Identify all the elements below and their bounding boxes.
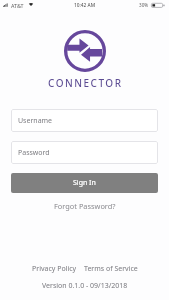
staticText: Username: [18, 116, 53, 126]
button[interactable]: Terms of Service: [83, 262, 139, 276]
button[interactable]: Forgot Password?: [48, 197, 122, 215]
staticText: Sign In: [73, 178, 96, 188]
staticText: Terms of Service: [84, 264, 138, 274]
staticText: CONNECTOR: [48, 76, 123, 90]
staticText: 30%: [139, 2, 149, 8]
staticText: 10:42 AM: [74, 2, 96, 9]
staticText: Version 0.1.0 - 09/13/2018: [42, 281, 128, 291]
staticText: Forgot Password?: [54, 201, 116, 211]
button[interactable]: Sign In: [11, 173, 158, 193]
button[interactable]: Privacy Policy: [31, 262, 78, 276]
staticText: Password: [18, 148, 50, 158]
button[interactable]: Password: [11, 141, 158, 164]
staticText: Privacy Policy: [32, 264, 77, 274]
button[interactable]: Username: [11, 109, 158, 132]
staticText: AT&T: [11, 2, 24, 9]
